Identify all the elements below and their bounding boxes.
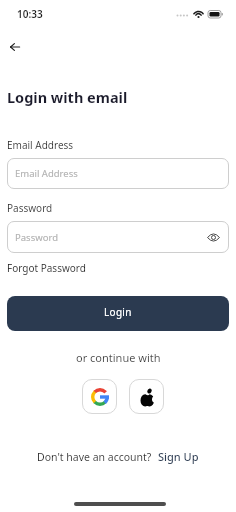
- staticText: Email Address: [7, 138, 74, 152]
- staticText: Don't have an account?: [37, 450, 152, 464]
- staticText: Email Address: [15, 167, 78, 180]
- staticText: 10:33: [17, 7, 43, 21]
- button[interactable]: Email Address: [7, 158, 229, 189]
- button[interactable]: [205, 229, 221, 245]
- button[interactable]: Login: [7, 296, 229, 331]
- staticText: Password: [7, 201, 53, 215]
- button[interactable]: [2, 36, 28, 58]
- staticText: Login: [104, 305, 132, 319]
- button[interactable]: [82, 379, 117, 414]
- staticText: Login with email: [7, 87, 128, 107]
- button[interactable]: Password: [7, 221, 229, 253]
- button[interactable]: Forgot Password: [7, 261, 86, 275]
- staticText: or continue with: [76, 350, 161, 365]
- staticText: Password: [15, 231, 58, 244]
- button[interactable]: Sign Up: [158, 449, 199, 464]
- button[interactable]: [129, 379, 164, 414]
